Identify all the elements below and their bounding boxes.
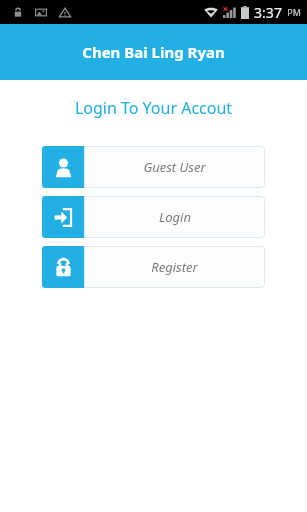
staticText: Login To Your Accout [0, 97, 307, 119]
button[interactable]: Login [42, 196, 265, 238]
button[interactable]: Guest User [42, 146, 265, 188]
staticText: PM [287, 6, 301, 18]
other: Register [42, 246, 84, 288]
other: Login [42, 196, 84, 238]
staticText: Guest User [143, 158, 206, 176]
staticText: Login [159, 208, 191, 226]
staticText: 3:37 [254, 3, 282, 22]
button[interactable]: Register [42, 246, 265, 288]
staticText: Register [151, 258, 198, 276]
other: Guest User [42, 146, 84, 188]
staticText: Chen Bai Ling Ryan [82, 42, 225, 62]
